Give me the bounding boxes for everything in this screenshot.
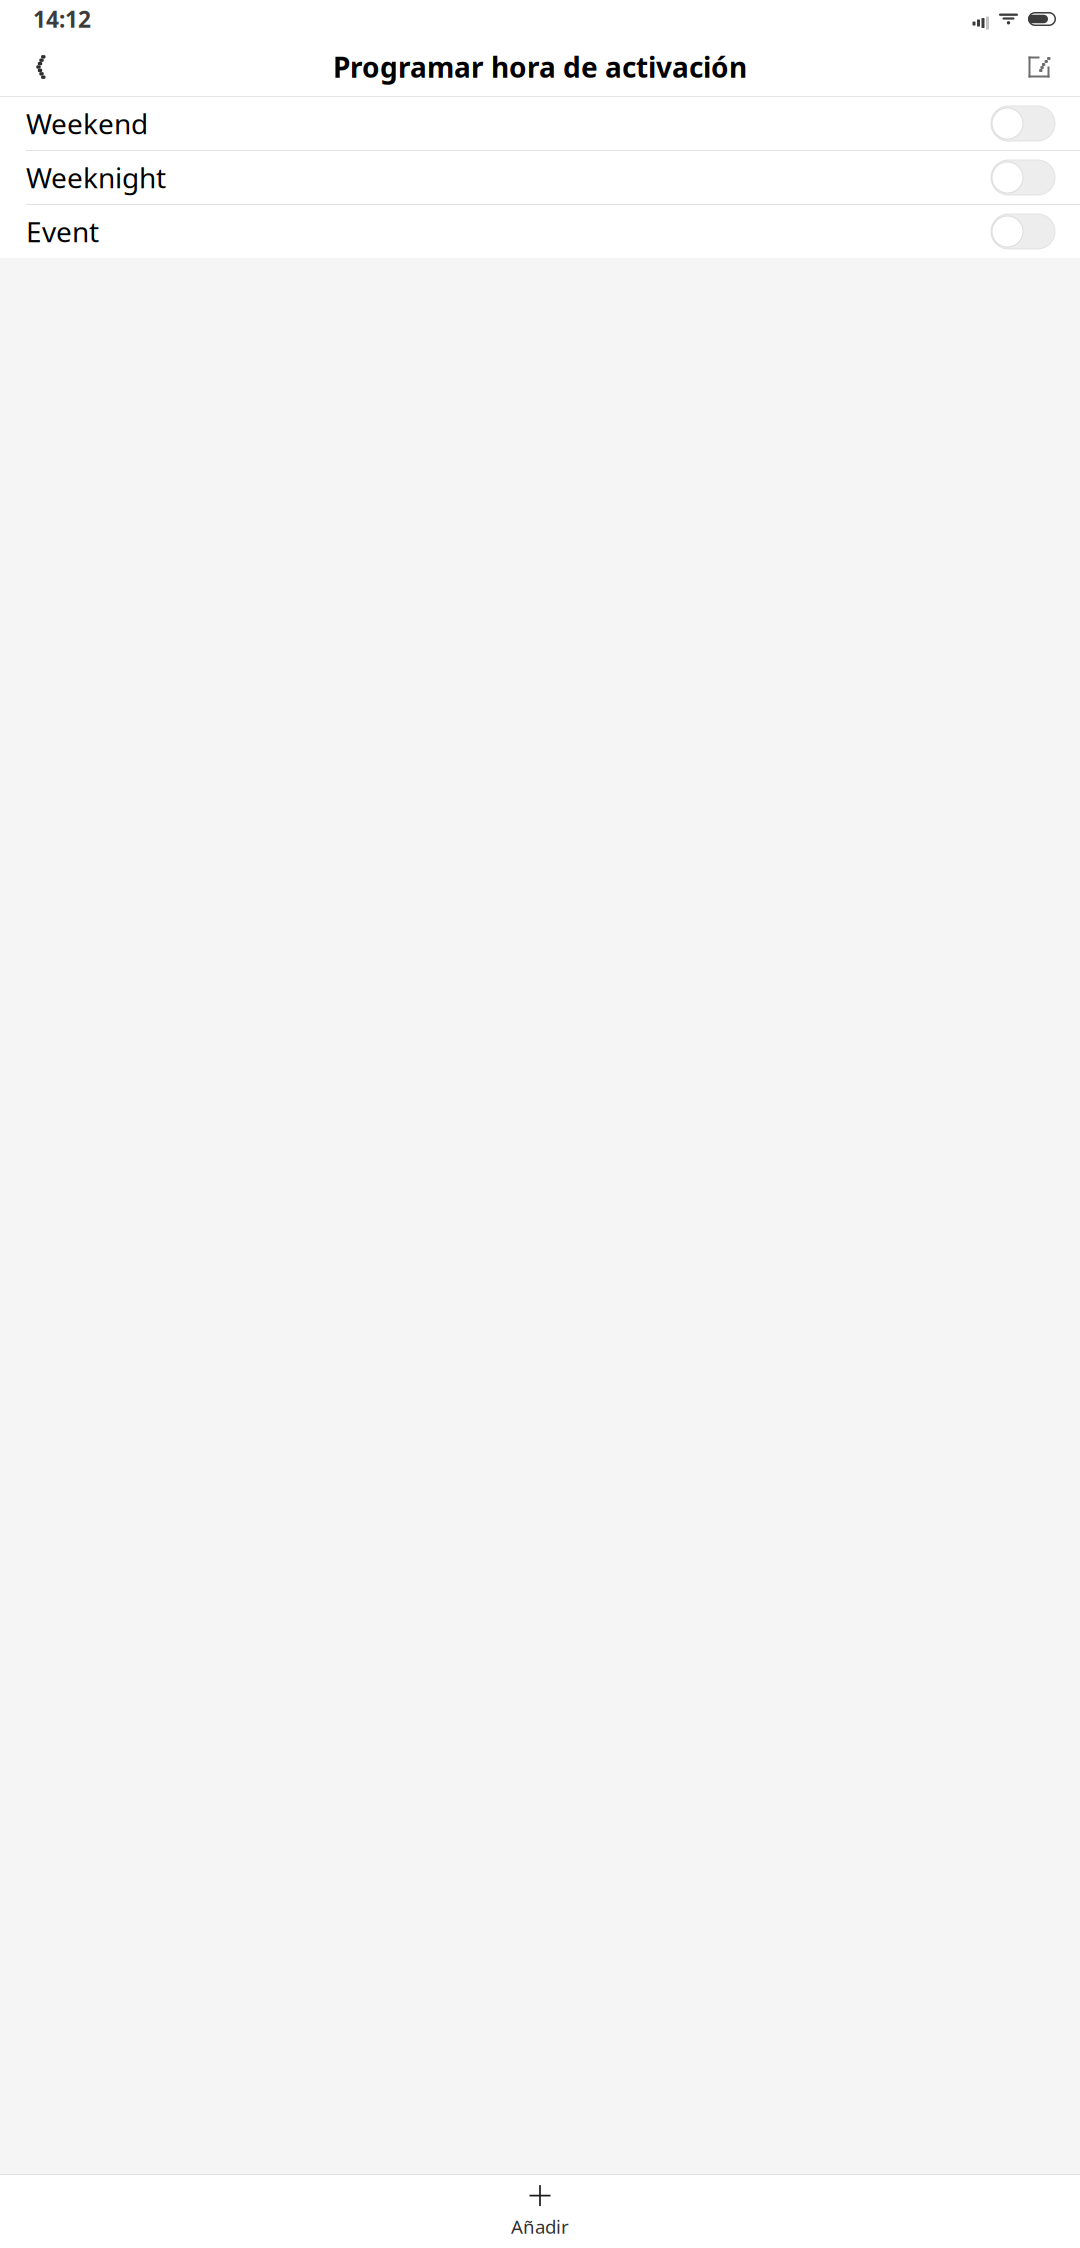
button[interactable]: Back xyxy=(12,40,66,94)
button[interactable]: Edit xyxy=(1012,40,1066,94)
staticText: Programar hora de activación xyxy=(333,48,747,86)
button[interactable]: Weeknight xyxy=(0,151,1080,204)
button[interactable]: Weekend xyxy=(0,97,1080,150)
button[interactable]: Añadir xyxy=(0,2175,1080,2248)
staticText: Añadir xyxy=(511,2214,569,2239)
staticText: Event xyxy=(26,213,99,250)
button[interactable]: Event xyxy=(0,205,1080,258)
staticText: Weeknight xyxy=(26,159,166,196)
staticText: Weekend xyxy=(26,105,148,142)
staticText: 14:12 xyxy=(33,4,91,34)
